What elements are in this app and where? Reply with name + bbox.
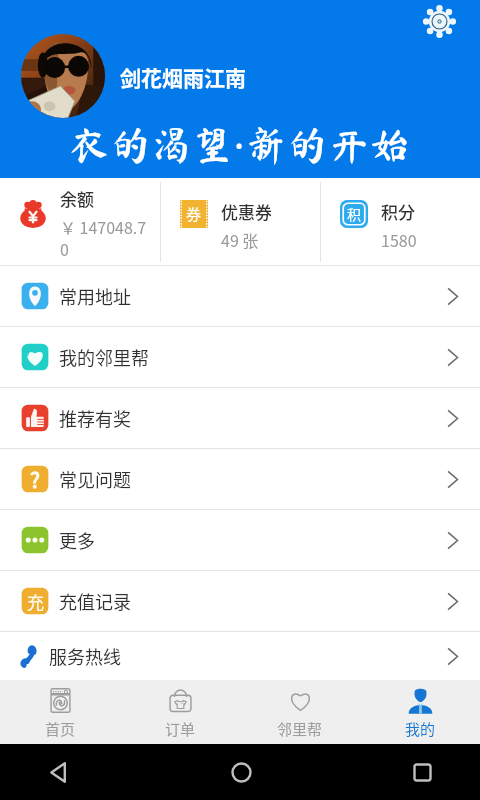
staticText: 积分 (381, 199, 415, 224)
button[interactable]: 券 (161, 178, 320, 265)
button[interactable]: 余额 (0, 178, 160, 265)
staticText: 更多 (59, 527, 95, 553)
staticText: 充值记录 (59, 588, 131, 614)
staticText: ? (30, 464, 40, 494)
staticText: 1580 (381, 228, 417, 251)
staticText: 首页 (45, 718, 76, 740)
button[interactable]: 常用地址 (0, 266, 480, 326)
button[interactable]: 我的邻里帮 (0, 327, 480, 387)
staticText: 衣的渴望·新的开始 (69, 117, 411, 171)
staticText: 优惠券 (221, 199, 272, 224)
button[interactable]: 我的 (360, 680, 480, 744)
staticText: 订单 (165, 718, 196, 740)
button[interactable]: 邻里帮 (240, 680, 360, 744)
staticText: 我的 (405, 718, 436, 740)
button[interactable]: 推荐有奖 (0, 388, 480, 448)
button[interactable]: Avatar (21, 34, 105, 118)
staticText: 余额 (60, 186, 94, 211)
staticText: ￥ 147048.7 0 (60, 215, 147, 260)
staticText: 剑花烟雨江南 (120, 62, 246, 92)
staticText: 邻里帮 (277, 718, 323, 740)
button[interactable]: ? (0, 449, 480, 509)
button[interactable]: Settings (418, 0, 461, 43)
staticText: 券 (186, 203, 202, 225)
button[interactable]: 充 (0, 571, 480, 631)
button[interactable]: 积 (321, 178, 480, 265)
staticText: 49 张 (221, 228, 259, 251)
staticText: 充 (27, 589, 44, 614)
staticText: 常用地址 (59, 283, 131, 309)
staticText: 积 (347, 204, 361, 224)
staticText: 常见问题 (59, 466, 131, 492)
staticText: 服务热线 (49, 643, 121, 669)
button[interactable]: 更多 (0, 510, 480, 570)
button[interactable]: 服务热线 (0, 632, 480, 680)
staticText: 推荐有奖 (59, 405, 131, 431)
staticText: 我的邻里帮 (59, 344, 149, 370)
button[interactable]: 订单 (120, 680, 240, 744)
button[interactable]: 首页 (0, 680, 120, 744)
